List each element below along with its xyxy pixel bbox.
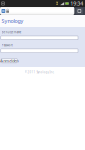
staticText: Anmelden bbox=[0, 58, 18, 63]
staticText: Passwort bbox=[2, 43, 13, 47]
button[interactable]: Address bar bbox=[0, 7, 74, 15]
button[interactable]: Anmelden bbox=[1, 58, 17, 63]
staticText: Benutzername bbox=[2, 30, 22, 34]
staticText: 19:34 bbox=[70, 0, 83, 7]
button[interactable]: Tabs bbox=[75, 7, 83, 15]
staticText: Synology bbox=[2, 17, 24, 25]
staticText: © 2011 Synology Inc. bbox=[24, 70, 54, 74]
